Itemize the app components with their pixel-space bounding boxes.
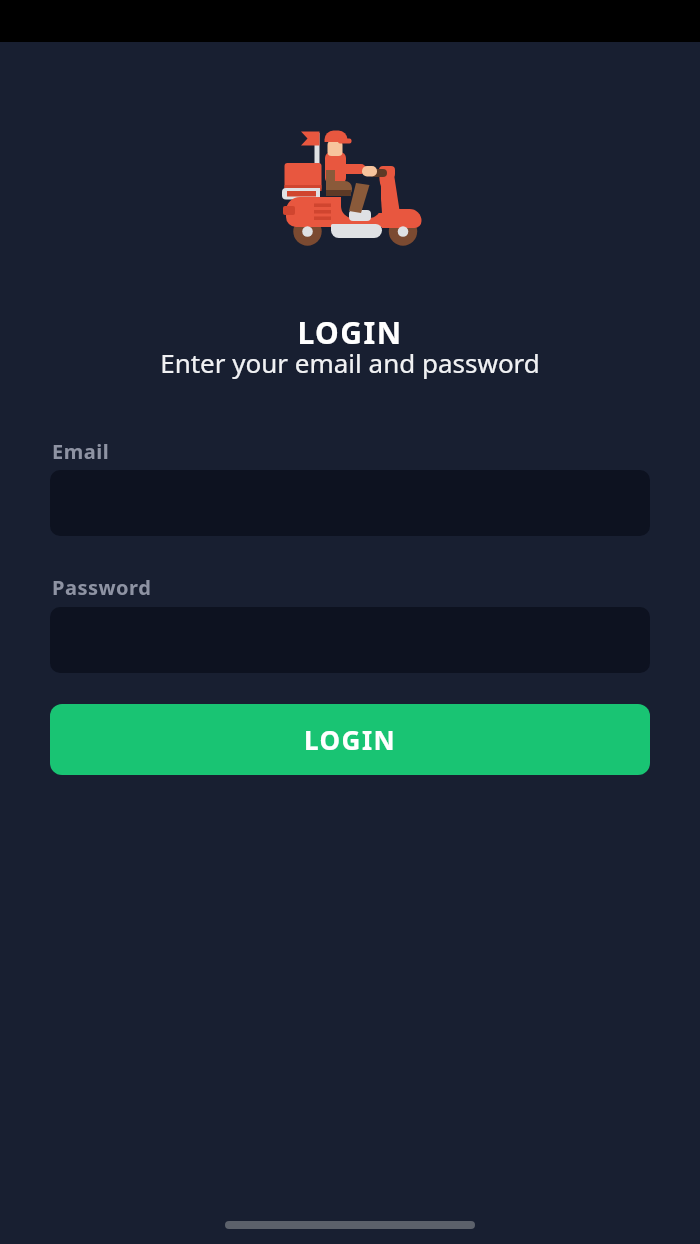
staticText: Enter your email and password [0,345,700,380]
staticText: Password [52,574,152,601]
staticText: Email [52,438,110,465]
staticText: LOGIN [304,722,397,757]
button[interactable]: LOGIN [50,704,650,775]
staticText: LOGIN [0,312,700,353]
